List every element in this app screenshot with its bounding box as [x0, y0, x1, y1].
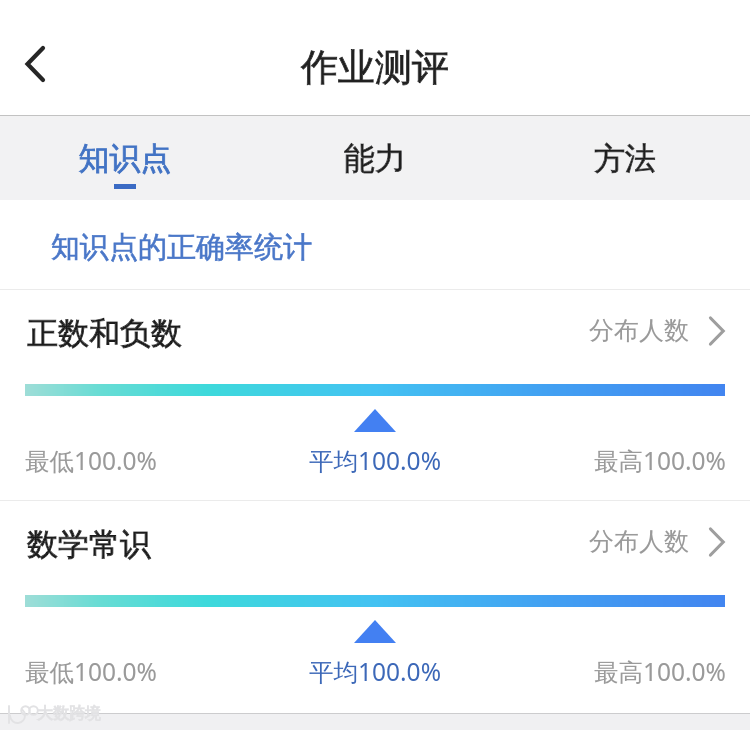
- staticText: 平均100.0%: [0, 655, 750, 688]
- staticText: 正数和负数: [27, 314, 182, 353]
- staticText: 分布人数: [589, 315, 689, 346]
- staticText: 作业测评: [0, 44, 750, 91]
- staticText: 知识点的正确率统计: [51, 229, 312, 266]
- staticText: 分布人数: [589, 526, 689, 557]
- button[interactable]: 正数和负数: [0, 290, 750, 368]
- button[interactable]: 方法: [500, 116, 750, 200]
- staticText: 正数和负数: [27, 314, 182, 353]
- staticText: 大数跨境: [37, 704, 101, 724]
- staticText: 最高100.0%: [594, 444, 726, 477]
- other: Open distribution: [707, 316, 725, 346]
- button[interactable]: 数学常识: [0, 501, 750, 579]
- button[interactable]: 能力: [250, 116, 500, 200]
- staticText: 最低100.0%: [25, 655, 157, 688]
- other: Open distribution: [707, 527, 725, 557]
- staticText: 能力: [250, 139, 500, 178]
- staticText: 最低100.0%: [25, 444, 157, 477]
- staticText: 知识点: [0, 139, 250, 178]
- button[interactable]: Back: [12, 38, 60, 90]
- staticText: 知识点: [0, 139, 250, 178]
- staticText: 作业测评: [0, 44, 750, 91]
- staticText: 能力: [250, 139, 500, 178]
- staticText: 数学常识: [27, 525, 151, 564]
- staticText: 最高100.0%: [594, 655, 726, 688]
- staticText: 知识点的正确率统计: [51, 229, 312, 266]
- staticText: 数学常识: [27, 525, 151, 564]
- button[interactable]: 知识点: [0, 116, 250, 200]
- staticText: 方法: [500, 139, 750, 178]
- staticText: 方法: [500, 139, 750, 178]
- staticText: 平均100.0%: [0, 444, 750, 477]
